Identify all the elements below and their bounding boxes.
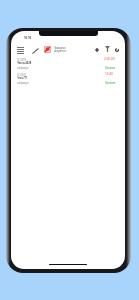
button[interactable]: Filter (102, 44, 112, 54)
button[interactable]: 10.12.2019 (11, 70, 125, 84)
button[interactable]: Edit (29, 44, 41, 57)
staticText: 16.80 (105, 72, 113, 76)
staticText: 10.12.2019 (17, 73, 26, 76)
button[interactable]: Menu (14, 44, 27, 57)
staticText: 10.12.2019 (17, 58, 26, 61)
staticText: документы (54, 49, 66, 52)
staticText: Оплачен (105, 81, 115, 84)
button[interactable]: Add (92, 45, 101, 54)
staticText: счёт-фактура (17, 81, 29, 84)
staticText: Оплачен (105, 66, 115, 69)
button[interactable]: 10.12.2019 (11, 55, 125, 69)
button[interactable]: Refresh (112, 45, 122, 55)
staticText: Приходные (54, 46, 66, 49)
staticText: Чек №4528 (17, 61, 31, 65)
staticText: счёт-фактура (17, 66, 29, 69)
staticText: 10:18 (24, 35, 32, 39)
staticText: 230.00 (104, 57, 115, 61)
staticText: Чек №777 (17, 76, 27, 80)
